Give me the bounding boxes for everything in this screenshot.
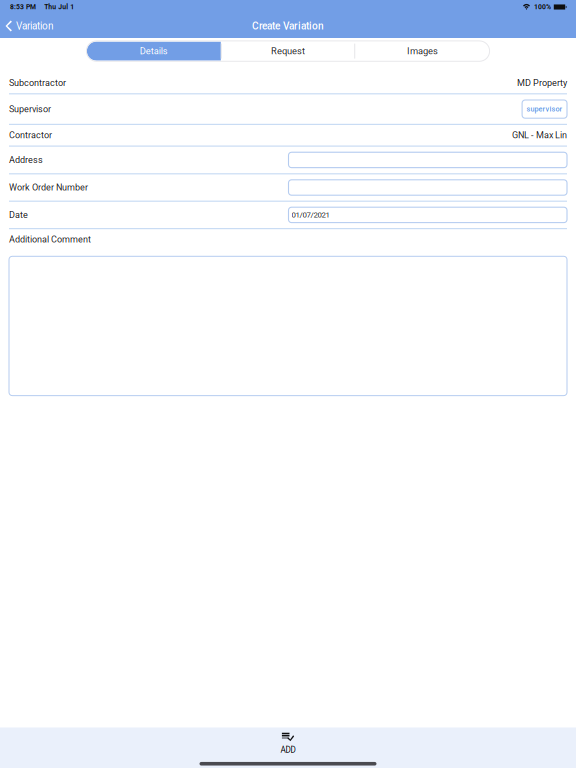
button[interactable]: Request [221,41,355,61]
staticText: Variation [16,20,54,32]
staticText: Supervisor [9,104,51,114]
button[interactable]: Details [86,41,221,61]
button[interactable]: Work Order Number [288,180,567,195]
button[interactable]: Additional Comment [9,256,567,396]
staticText: Thu Jul 1 [44,3,74,11]
staticText: Additional Comment [9,234,91,245]
staticText: 8:53 PM [10,3,36,11]
button[interactable]: Date [288,207,567,223]
staticText: Images [407,46,438,56]
staticText: 100% [534,3,551,11]
staticText: Address [9,155,43,165]
staticText: MD Property [517,78,567,88]
staticText: Subcontractor [9,78,66,88]
staticText: Date [9,210,28,220]
staticText: Request [271,46,305,56]
button[interactable]: ADD [251,733,325,754]
button[interactable]: supervisor [522,100,567,118]
staticText: GNL - Max Lin [512,130,567,140]
staticText: 01/07/2021 [291,210,329,219]
staticText: Contractor [9,130,52,140]
button[interactable]: Images [355,41,490,61]
staticText: Create Variation [252,20,324,32]
staticText: ADD [280,745,295,755]
staticText: Work Order Number [9,182,88,193]
staticText: Details [140,46,168,56]
button[interactable]: Address [288,152,567,168]
staticText: supervisor [527,105,563,113]
button[interactable]: Variation [1,16,59,36]
